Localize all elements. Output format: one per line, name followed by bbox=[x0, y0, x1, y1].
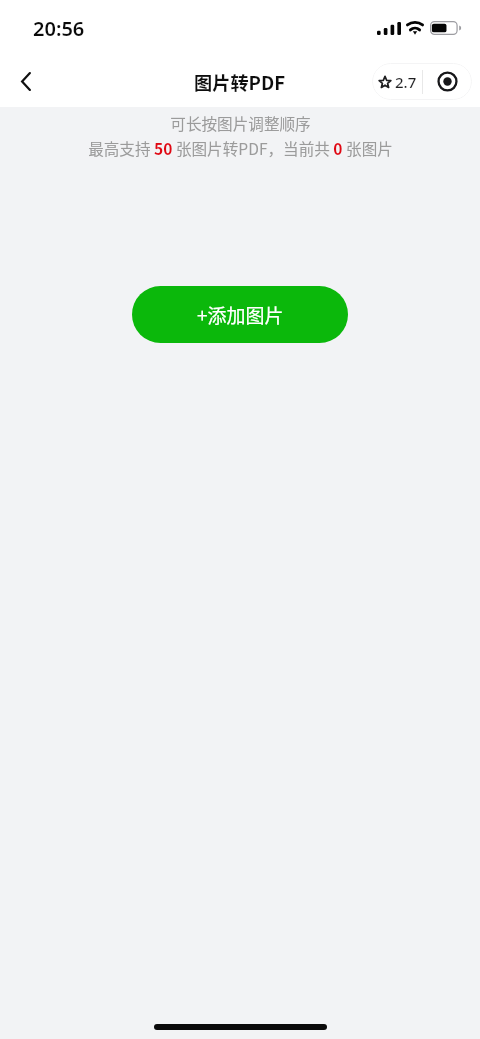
staticText: 2.7 bbox=[395, 72, 417, 92]
button[interactable]: Back bbox=[0, 56, 51, 107]
staticText: +添加图片 bbox=[197, 301, 284, 329]
button[interactable]: More menu bbox=[423, 63, 472, 100]
staticText: 可长按图片调整顺序 bbox=[170, 112, 311, 135]
staticText: 最高支持 50 张图片转PDF，当前共 0 张图片 bbox=[88, 137, 393, 160]
staticText: 图片转PDF bbox=[194, 68, 286, 95]
button[interactable]: +添加图片 bbox=[132, 286, 348, 343]
button[interactable]: 2.7 bbox=[372, 63, 422, 100]
staticText: 20:56 bbox=[33, 15, 85, 42]
